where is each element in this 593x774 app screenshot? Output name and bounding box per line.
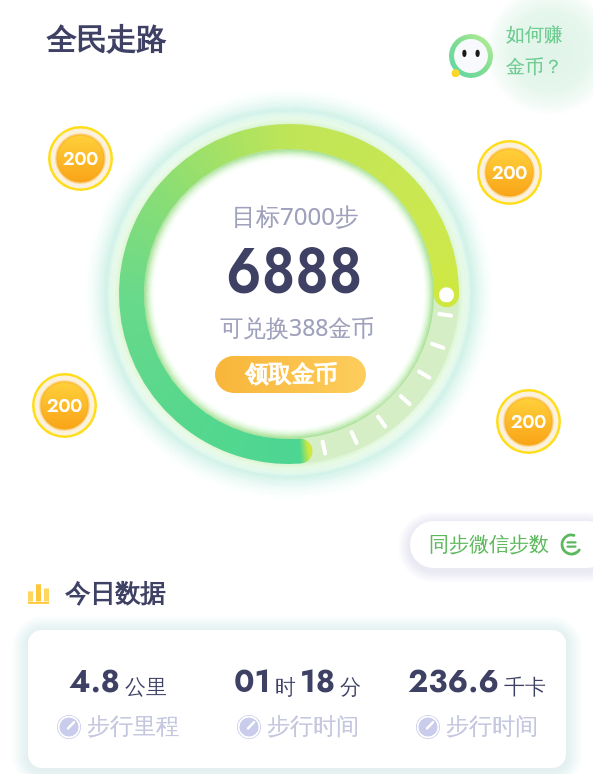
staticText: 可兑换388金币 (220, 311, 375, 342)
staticText: 200 (511, 408, 547, 435)
staticText: 200 (63, 145, 99, 172)
staticText: 全民走路 (46, 21, 166, 59)
staticText: 200 (47, 392, 83, 419)
staticText: 千卡 (504, 674, 546, 700)
button[interactable]: 领取金币 (215, 356, 366, 393)
staticText: 步行时间 (267, 712, 359, 741)
staticText: 今日数据 (65, 578, 165, 609)
button[interactable]: 4.8 (28, 630, 208, 768)
button[interactable]: 200 (48, 126, 113, 191)
staticText: 领取金币 (245, 360, 337, 389)
staticText: 18 (300, 659, 336, 704)
staticText: 公里 (125, 674, 167, 700)
staticText: 步行时间 (446, 712, 538, 741)
staticText: 金币？ (506, 55, 563, 79)
staticText: 6888 (226, 226, 363, 294)
staticText: 同步微信步数 (429, 532, 549, 557)
staticText: 时 (275, 674, 296, 700)
staticText: 236.6 (408, 659, 500, 704)
other: Sync WeChat steps (559, 532, 584, 557)
staticText: 分 (340, 674, 361, 700)
button[interactable]: 200 (477, 140, 542, 205)
staticText: 如何赚 (506, 23, 563, 47)
other: How to earn coins (449, 34, 493, 78)
button[interactable]: 01 (208, 630, 387, 768)
button[interactable]: 200 (32, 373, 97, 438)
button[interactable]: 200 (496, 389, 561, 454)
staticText: 200 (492, 159, 528, 186)
button[interactable]: 同步微信步数 (410, 521, 593, 568)
button[interactable]: How to earn coins (445, 6, 593, 102)
button[interactable]: 236.6 (387, 630, 566, 768)
staticText: 4.8 (69, 659, 121, 704)
staticText: 目标7000步 (232, 199, 359, 232)
staticText: 步行里程 (87, 712, 179, 741)
staticText: 01 (234, 659, 271, 704)
